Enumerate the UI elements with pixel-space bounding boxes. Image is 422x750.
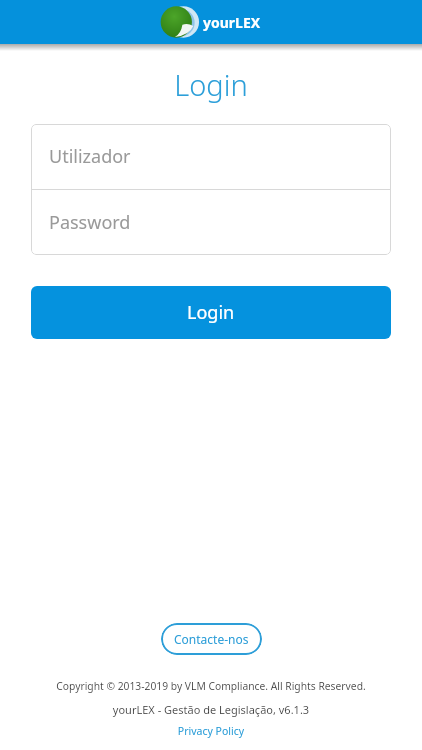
staticText: Contacte-nos bbox=[174, 631, 249, 647]
staticText: yourLEX bbox=[203, 13, 261, 32]
button[interactable]: Contacte-nos bbox=[161, 623, 262, 655]
staticText: Login bbox=[187, 300, 235, 325]
button[interactable]: Utilizador bbox=[31, 124, 391, 189]
button[interactable]: Login bbox=[31, 286, 391, 339]
staticText: Copyright © 2013-2019 by VLM Compliance.… bbox=[0, 679, 422, 693]
staticText: Utilizador bbox=[49, 144, 131, 169]
staticText: Login bbox=[0, 65, 422, 104]
staticText: yourLEX - Gestão de Legislação, v6.1.3 bbox=[0, 702, 422, 717]
button[interactable]: Privacy Policy bbox=[0, 724, 422, 738]
button[interactable]: Password bbox=[31, 190, 391, 255]
staticText: Password bbox=[49, 210, 131, 235]
